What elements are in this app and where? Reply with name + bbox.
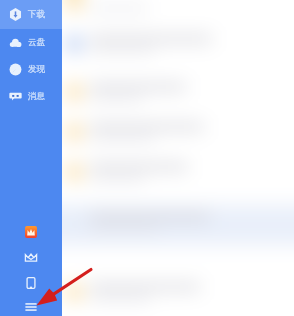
button[interactable]: Hot app [25,226,37,238]
staticText: 消息 [28,91,46,102]
button[interactable] [62,211,294,233]
button[interactable] [62,33,294,55]
button[interactable] [62,0,294,13]
button[interactable] [62,81,294,103]
staticText: 云盘 [28,37,46,48]
button[interactable] [62,121,294,143]
button[interactable]: Membership [24,251,38,265]
button[interactable]: 发现 [0,56,62,83]
button[interactable] [62,281,294,303]
button[interactable]: 云盘 [0,29,62,56]
staticText: 下载 [28,9,46,20]
button[interactable]: 下载 [0,0,62,29]
staticText: 发现 [28,64,46,75]
button[interactable] [62,161,294,183]
button[interactable]: Devices [24,276,38,290]
button[interactable]: Menu [24,300,38,314]
button[interactable]: 消息 [0,83,62,110]
